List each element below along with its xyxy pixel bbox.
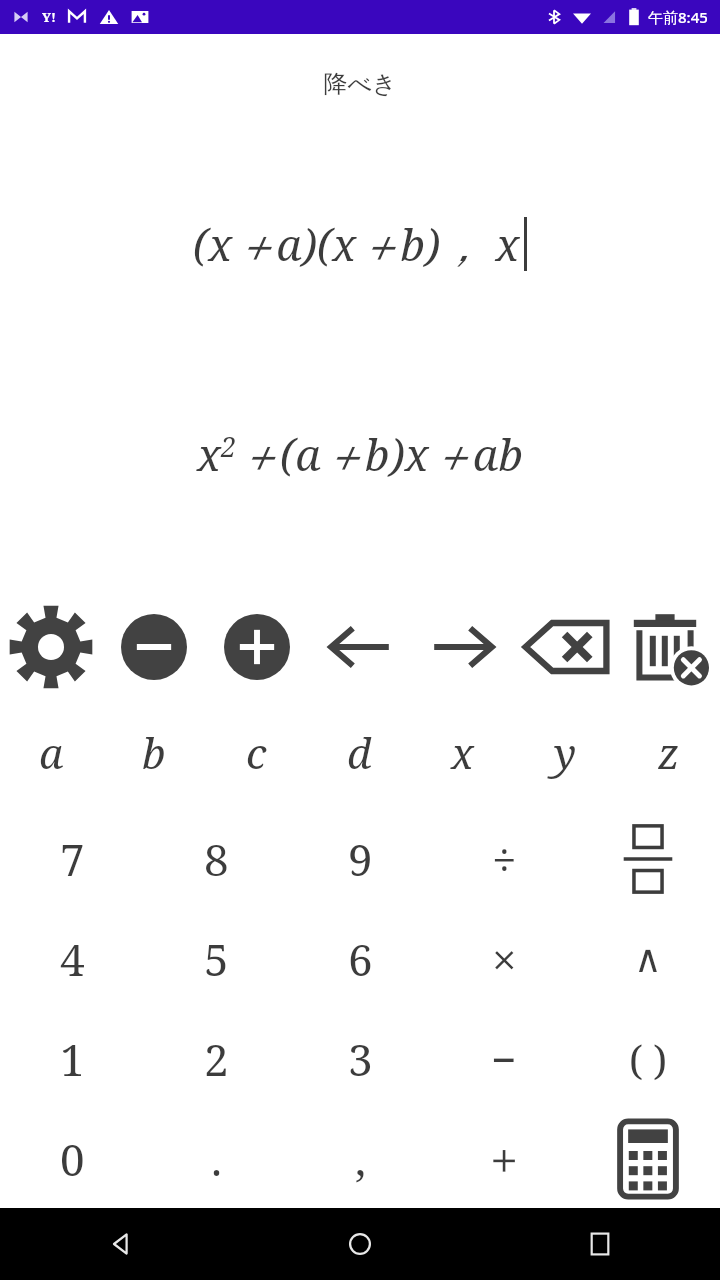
button[interactable]: Increase	[205, 592, 308, 702]
button[interactable]: ÷	[432, 809, 576, 909]
button[interactable]: 2	[144, 1009, 288, 1109]
button[interactable]: a	[0, 706, 102, 798]
staticText: 9	[348, 829, 373, 889]
staticText: 8	[204, 829, 229, 889]
button[interactable]: Clear all	[617, 592, 720, 702]
button[interactable]: Back	[0, 1208, 240, 1280]
staticText: 7	[60, 829, 85, 889]
button[interactable]: b	[102, 706, 205, 798]
button[interactable]: ＋	[432, 1109, 576, 1209]
button[interactable]: 5	[144, 909, 288, 1009]
staticText: d	[347, 724, 372, 781]
staticText: ( )	[629, 1032, 668, 1086]
staticText: ,	[355, 1129, 366, 1189]
staticText: Y!	[42, 8, 56, 26]
button[interactable]: ∧	[576, 909, 720, 1009]
staticText: y	[554, 724, 577, 781]
button[interactable]: y	[514, 706, 617, 798]
staticText: a	[39, 724, 64, 781]
staticText: −	[491, 1029, 517, 1089]
staticText: 2	[204, 1029, 229, 1089]
staticText: c	[246, 724, 267, 781]
button[interactable]: z	[617, 706, 720, 798]
button[interactable]: 0	[0, 1109, 144, 1209]
staticText: 午前8:45	[648, 7, 708, 27]
button[interactable]: ×	[432, 909, 576, 1009]
button[interactable]: d	[308, 706, 411, 798]
staticText: 5	[204, 929, 229, 989]
button[interactable]: .	[144, 1109, 288, 1209]
button[interactable]: Calculator	[576, 1109, 720, 1209]
button[interactable]: 7	[0, 809, 144, 909]
staticText: (x＋a)(x＋b)， x	[193, 214, 520, 274]
button[interactable]: Fraction	[576, 809, 720, 909]
button[interactable]: c	[205, 706, 308, 798]
staticText: ∧	[634, 937, 662, 981]
staticText: .	[211, 1129, 222, 1189]
staticText: 0	[60, 1129, 85, 1189]
staticText: x	[451, 724, 474, 781]
button[interactable]: −	[432, 1009, 576, 1109]
button[interactable]: Recents	[480, 1208, 720, 1280]
staticText: ＋	[483, 1133, 525, 1186]
staticText: b	[142, 724, 166, 781]
button[interactable]: x	[411, 706, 514, 798]
button[interactable]: Decrease	[102, 592, 205, 702]
button[interactable]: 8	[144, 809, 288, 909]
button[interactable]: Home	[240, 1208, 480, 1280]
button[interactable]: ( )	[576, 1009, 720, 1109]
button[interactable]: 9	[288, 809, 432, 909]
staticText: 1	[60, 1029, 85, 1089]
staticText: z	[658, 724, 680, 781]
button[interactable]: 1	[0, 1009, 144, 1109]
button[interactable]: Move right	[411, 592, 514, 702]
staticText: 3	[348, 1029, 373, 1089]
staticText: 6	[348, 929, 373, 989]
button[interactable]: Backspace	[514, 592, 617, 702]
button[interactable]: 4	[0, 909, 144, 1009]
button[interactable]: Settings	[0, 592, 102, 702]
button[interactable]: Move left	[308, 592, 411, 702]
button[interactable]: ,	[288, 1109, 432, 1209]
staticText: 降べき	[323, 69, 397, 99]
staticText: x2＋(a＋b)x＋ab	[197, 424, 523, 484]
button[interactable]: 3	[288, 1009, 432, 1109]
staticText: ×	[492, 929, 517, 989]
staticText: 4	[60, 929, 85, 989]
button[interactable]: 6	[288, 909, 432, 1009]
staticText: ÷	[492, 829, 517, 889]
